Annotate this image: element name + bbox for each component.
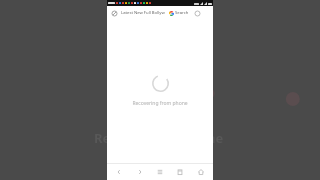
button[interactable]: Home — [193, 164, 209, 180]
staticText: ne — [207, 129, 224, 147]
staticText: Recovering from phone — [132, 100, 188, 107]
button[interactable]: Search — [168, 9, 190, 17]
button[interactable]: Tabs — [193, 9, 202, 18]
staticText: Search — [175, 10, 189, 16]
button[interactable]: Tabs — [172, 164, 188, 180]
staticText: Latest New Full Bollyw — [121, 10, 165, 16]
staticText: Re — [94, 129, 111, 147]
button[interactable]: Back — [111, 164, 127, 180]
button[interactable]: Site information — [110, 9, 119, 18]
button[interactable]: Forward — [132, 164, 148, 180]
button[interactable]: Menu — [152, 164, 168, 180]
